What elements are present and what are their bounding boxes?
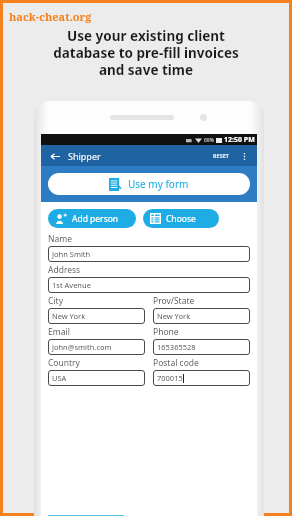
- staticText: Address: [48, 264, 81, 276]
- staticText: 165365528: [157, 342, 196, 352]
- staticText: USA: [52, 373, 67, 383]
- staticText: 700015: [157, 373, 183, 383]
- button[interactable]: New York: [48, 308, 145, 324]
- staticText: New York: [157, 311, 191, 321]
- staticText: john@smith.com: [52, 342, 112, 352]
- button[interactable]: John Smith: [48, 246, 250, 262]
- staticText: City: [48, 295, 63, 307]
- staticText: Country: [48, 357, 80, 369]
- button[interactable]: USA: [48, 370, 145, 386]
- button[interactable]: john@smith.com: [48, 339, 145, 355]
- staticText: Postal code: [153, 357, 199, 369]
- button[interactable]: Back: [47, 148, 63, 164]
- button[interactable]: New York: [153, 308, 250, 324]
- staticText: New York: [52, 311, 86, 321]
- button[interactable]: 165365528: [153, 339, 250, 355]
- button[interactable]: 700015: [153, 370, 250, 386]
- staticText: 69%: [204, 137, 214, 144]
- staticText: 12:50 PM: [224, 135, 255, 145]
- button[interactable]: 1st Avenue: [48, 277, 250, 293]
- staticText: 1st Avenue: [52, 280, 91, 290]
- button[interactable]: Add person: [48, 209, 136, 228]
- staticText: Use your existing client database to pre…: [3, 27, 289, 79]
- staticText: Phone: [153, 326, 179, 338]
- staticText: Add person: [72, 213, 119, 225]
- staticText: Prov/State: [153, 295, 195, 307]
- button[interactable]: RESET: [211, 152, 231, 159]
- staticText: Choose: [166, 213, 196, 225]
- staticText: RESET: [213, 152, 229, 159]
- staticText: Email: [48, 326, 70, 338]
- button[interactable]: Choose: [143, 209, 219, 228]
- staticText: John Smith: [52, 249, 91, 259]
- staticText: Name: [48, 233, 72, 245]
- staticText: Shipper: [68, 150, 101, 162]
- staticText: hack-cheat.org: [9, 9, 92, 24]
- button[interactable]: More options: [237, 149, 251, 163]
- staticText: Use my form: [128, 177, 189, 191]
- button[interactable]: Use my form: [48, 173, 250, 195]
